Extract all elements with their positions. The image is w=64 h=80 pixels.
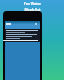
staticText: Fav Water bbox=[24, 1, 41, 6]
button[interactable]: Menu bbox=[5, 21, 40, 29]
staticText: Meals list bbox=[24, 7, 41, 12]
